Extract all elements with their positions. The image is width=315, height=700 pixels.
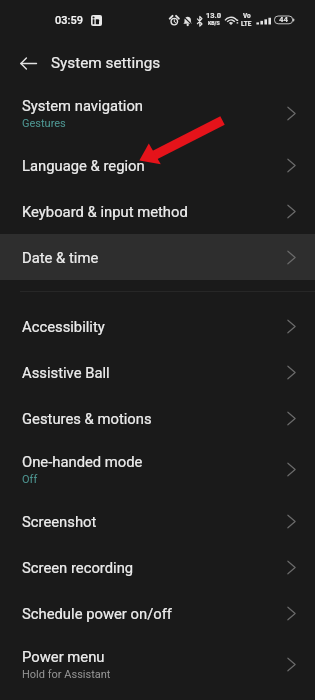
button[interactable]: Power menu <box>0 636 315 693</box>
button[interactable]: Assistive Ball <box>0 349 315 395</box>
button[interactable]: Keyboard & input method <box>0 188 315 234</box>
staticText: Schedule power on/off <box>22 605 172 622</box>
button[interactable]: One-handed mode <box>0 441 315 498</box>
staticText: Screenshot <box>22 513 97 530</box>
staticText: One-handed mode <box>22 453 143 470</box>
staticText: 44 <box>279 15 288 24</box>
staticText: Gestures <box>22 117 66 130</box>
staticText: Assistive Ball <box>22 364 110 381</box>
staticText: Screen recording <box>22 559 134 576</box>
staticText: Off <box>22 473 38 486</box>
staticText: 13.0 <box>206 11 222 20</box>
button[interactable]: Schedule power on/off <box>0 590 315 636</box>
button[interactable]: Screenshot <box>0 498 315 544</box>
button[interactable]: Accessibility <box>0 303 315 349</box>
button[interactable]: Back <box>6 50 51 76</box>
button[interactable]: Language & region <box>0 142 315 188</box>
staticText: Date & time <box>22 249 99 266</box>
staticText: Vo <box>243 12 251 20</box>
button[interactable]: Screen recording <box>0 544 315 590</box>
staticText: Power menu <box>22 648 105 665</box>
staticText: LTE <box>241 20 252 28</box>
staticText: KB/S <box>208 20 220 26</box>
button[interactable]: System navigation <box>0 85 315 142</box>
staticText: System navigation <box>22 97 144 114</box>
staticText: Keyboard & input method <box>22 203 188 220</box>
staticText: Hold for Assistant <box>22 668 111 681</box>
staticText: 03:59 <box>55 14 83 27</box>
button[interactable]: Gestures & motions <box>0 395 315 441</box>
button[interactable]: Date & time <box>0 234 315 280</box>
staticText: Accessibility <box>22 318 105 335</box>
staticText: Gestures & motions <box>22 410 152 427</box>
staticText: System settings <box>51 54 161 72</box>
staticText: Language & region <box>22 157 145 174</box>
